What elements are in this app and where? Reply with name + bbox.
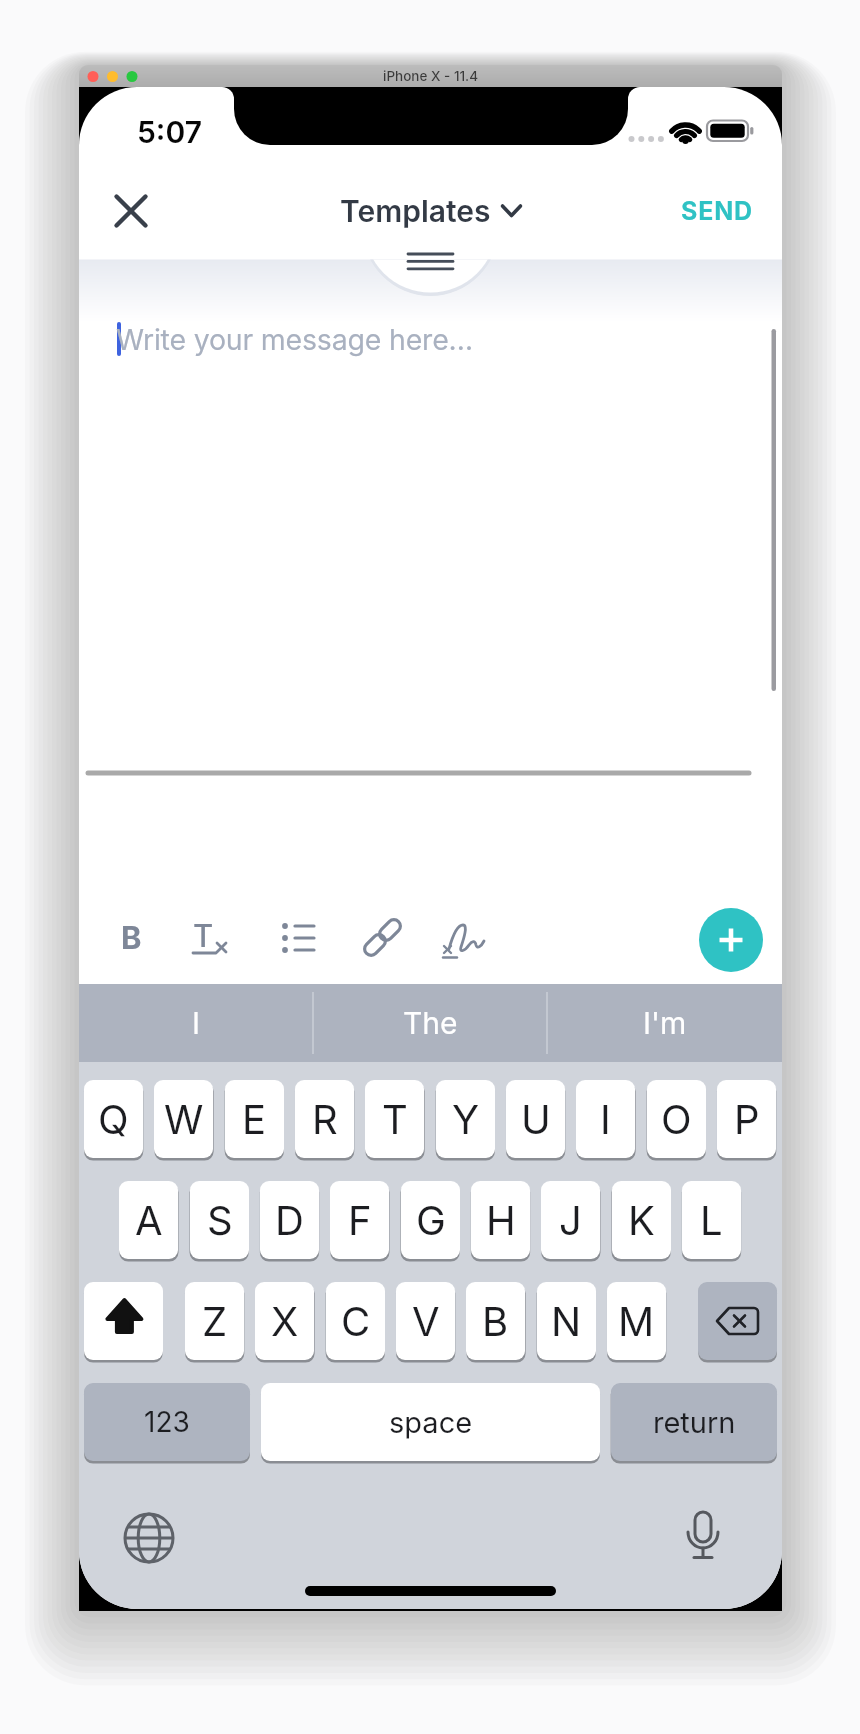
button[interactable] <box>274 914 322 962</box>
button[interactable]: P <box>717 1080 776 1158</box>
staticText: 5:07 <box>137 114 202 150</box>
staticText: 123 <box>144 1405 190 1439</box>
button[interactable] <box>699 908 763 972</box>
button[interactable]: H <box>471 1181 530 1259</box>
button[interactable] <box>121 1510 177 1566</box>
button[interactable]: L <box>682 1181 741 1259</box>
staticText: M <box>618 1297 655 1345</box>
button[interactable]: space <box>261 1383 600 1461</box>
staticText: Q <box>98 1095 129 1143</box>
staticText: W <box>164 1095 204 1143</box>
button[interactable]: T <box>186 914 230 962</box>
staticText: B <box>121 919 142 957</box>
button[interactable] <box>442 914 494 962</box>
staticText: O <box>661 1095 692 1143</box>
staticText: N <box>551 1297 582 1345</box>
staticText: iPhone X - 11.4 <box>383 68 479 84</box>
staticText: J <box>559 1196 582 1244</box>
staticText: S <box>207 1196 233 1244</box>
button[interactable]: W <box>154 1080 213 1158</box>
button[interactable]: SEND <box>620 188 753 234</box>
staticText: Write your message here… <box>116 322 473 356</box>
staticText: return <box>653 1405 736 1440</box>
button[interactable]: B <box>107 914 155 962</box>
staticText: U <box>521 1095 551 1143</box>
button[interactable]: X <box>255 1282 314 1360</box>
staticText: P <box>734 1095 760 1143</box>
button[interactable] <box>84 1282 163 1360</box>
button[interactable] <box>675 1508 731 1564</box>
button[interactable]: U <box>506 1080 565 1158</box>
staticText: F <box>348 1196 372 1244</box>
button[interactable]: B <box>466 1282 525 1360</box>
staticText: T <box>193 917 214 955</box>
button[interactable]: I <box>79 984 313 1062</box>
staticText: I'm <box>643 1005 687 1041</box>
staticText: D <box>275 1196 304 1244</box>
staticText: A <box>135 1196 163 1244</box>
button[interactable]: D <box>260 1181 319 1259</box>
staticText: R <box>312 1095 338 1143</box>
staticText: The <box>403 1005 458 1041</box>
button[interactable]: The <box>313 984 547 1062</box>
staticText: V <box>412 1297 440 1345</box>
button[interactable]: Z <box>185 1282 244 1360</box>
button[interactable] <box>103 183 159 239</box>
button[interactable]: T <box>365 1080 424 1158</box>
staticText: G <box>416 1196 446 1244</box>
button[interactable] <box>374 230 487 292</box>
staticText: SEND <box>681 196 753 226</box>
button[interactable]: return <box>611 1383 777 1461</box>
staticText: T <box>382 1095 408 1143</box>
button[interactable]: O <box>647 1080 706 1158</box>
button[interactable] <box>698 1282 777 1360</box>
button[interactable]: Q <box>84 1080 143 1158</box>
button[interactable]: Templates <box>280 186 581 236</box>
staticText: I <box>192 1005 201 1041</box>
staticText: B <box>482 1297 509 1345</box>
staticText: Templates <box>340 193 491 229</box>
staticText: E <box>242 1095 267 1143</box>
staticText: L <box>700 1196 723 1244</box>
button[interactable]: S <box>190 1181 249 1259</box>
button[interactable]: Y <box>436 1080 495 1158</box>
button[interactable]: E <box>225 1080 284 1158</box>
button[interactable]: C <box>326 1282 385 1360</box>
button[interactable]: G <box>401 1181 460 1259</box>
staticText: Y <box>452 1095 480 1143</box>
button[interactable]: I'm <box>547 984 782 1062</box>
button[interactable]: F <box>330 1181 389 1259</box>
staticText: H <box>486 1196 516 1244</box>
button[interactable]: V <box>396 1282 455 1360</box>
button[interactable]: R <box>295 1080 354 1158</box>
button[interactable]: I <box>576 1080 635 1158</box>
button[interactable]: K <box>612 1181 671 1259</box>
button[interactable]: Write your message here… <box>116 318 696 360</box>
button[interactable] <box>359 914 407 962</box>
button[interactable]: M <box>607 1282 666 1360</box>
staticText: C <box>341 1297 371 1345</box>
button[interactable]: 123 <box>84 1383 250 1461</box>
staticText: space <box>389 1405 473 1440</box>
staticText: I <box>600 1095 611 1143</box>
staticText: K <box>628 1196 655 1244</box>
button[interactable]: J <box>541 1181 600 1259</box>
button[interactable]: N <box>537 1282 596 1360</box>
staticText: X <box>271 1297 299 1345</box>
button[interactable]: A <box>119 1181 178 1259</box>
staticText: Z <box>202 1297 228 1345</box>
